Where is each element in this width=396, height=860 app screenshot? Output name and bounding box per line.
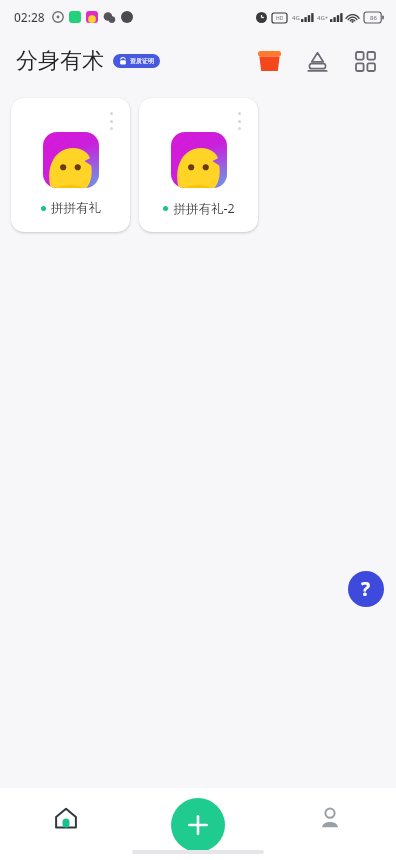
staticText: 拼拼有礼-2 [173,200,235,217]
staticText: HD [276,15,284,22]
button[interactable]: Seal [300,44,334,78]
button[interactable]: 资质证明 [113,54,160,68]
button[interactable]: More options [105,112,117,130]
staticText: 资质证明 [130,57,154,65]
button[interactable]: Help [348,571,384,607]
button[interactable]: More options [233,112,245,130]
button[interactable]: Promotions [252,44,286,78]
staticText: 分身有术 [16,47,104,75]
button[interactable]: More options [11,98,130,232]
staticText: 86 [370,14,377,22]
staticText: 4G+ [317,14,329,22]
staticText: ? [361,576,371,602]
button[interactable]: Add clone [171,798,225,852]
button[interactable]: Grid view [348,44,382,78]
button[interactable]: Home [0,796,132,840]
button[interactable]: Profile [264,796,396,840]
staticText: 02:28 [14,9,45,25]
staticText: 4G [292,14,300,22]
staticText: 拼拼有礼 [51,200,101,216]
button[interactable]: More options [139,98,258,232]
